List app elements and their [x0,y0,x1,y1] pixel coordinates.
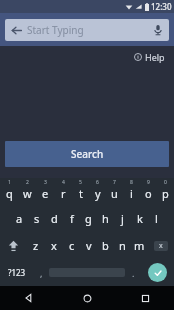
staticText: y [95,186,101,201]
button[interactable]: 3 [36,178,54,205]
staticText: w [23,186,32,201]
staticText: z [33,238,39,253]
staticText: Help [145,51,165,63]
button[interactable]: Shift [0,232,27,259]
staticText: t [79,186,83,201]
staticText: i [130,186,133,201]
button[interactable]: . [125,259,141,286]
staticText: m [134,238,145,253]
staticText: 6 [96,179,99,186]
button[interactable]: Recents [116,286,174,310]
button[interactable]: Search [5,141,169,167]
staticText: 1 [8,179,11,186]
staticText: 2 [26,179,29,186]
button[interactable]: b [97,232,114,259]
button[interactable]: Help [125,48,174,66]
staticText: c [69,238,75,253]
staticText: k [137,211,143,226]
staticText: o [145,186,152,201]
button[interactable]: Space [49,259,125,286]
staticText: a [16,211,23,226]
button[interactable]: 2 [18,178,36,205]
staticText: q [6,186,13,201]
button[interactable]: 6 [89,178,106,205]
staticText: , [40,267,43,279]
staticText: v [86,238,92,253]
button[interactable]: 1 [0,178,18,205]
button[interactable]: f [63,205,80,232]
staticText: s [34,211,40,226]
button[interactable]: c [63,232,80,259]
staticText: 9 [147,179,150,186]
button[interactable]: 7 [106,178,123,205]
staticText: b [102,238,109,253]
staticText: ?123 [8,267,26,278]
button[interactable]: h [97,205,114,232]
button[interactable]: l [148,205,165,232]
button[interactable]: g [80,205,97,232]
staticText: j [121,211,124,226]
staticText: d [51,211,58,226]
button[interactable]: Enter [141,259,174,286]
button[interactable]: n [114,232,131,259]
button[interactable]: Backspace [148,232,174,259]
staticText: 12:30 [151,1,172,12]
staticText: x [51,238,57,253]
button[interactable]: ?123 [0,259,33,286]
button[interactable]: v [80,232,97,259]
staticText: u [111,186,118,201]
staticText: r [61,186,66,201]
staticText: 3 [44,179,47,186]
button[interactable]: s [28,205,46,232]
staticText: f [70,211,74,226]
button[interactable]: 5 [72,178,89,205]
staticText: . [132,267,135,279]
staticText: 0 [164,179,167,186]
button[interactable]: k [131,205,148,232]
button[interactable]: , [33,259,49,286]
staticText: h [102,211,109,226]
staticText: n [119,238,126,253]
staticText: 5 [79,179,82,186]
staticText: l [155,211,158,226]
button[interactable]: 4 [54,178,72,205]
staticText: p [162,186,169,201]
button[interactable]: d [46,205,63,232]
button[interactable]: 8 [123,178,140,205]
button[interactable]: a [10,205,28,232]
button[interactable]: j [114,205,131,232]
button[interactable]: z [27,232,45,259]
button[interactable]: x [45,232,63,259]
button[interactable]: 0 [157,178,174,205]
staticText: g [85,211,92,226]
staticText: e [42,186,49,201]
button[interactable]: Start Typing [27,19,147,41]
staticText: x [159,241,163,251]
button[interactable]: Voice search [147,19,169,41]
button[interactable]: 9 [140,178,157,205]
button[interactable]: Back [5,19,27,41]
staticText: 4 [62,179,65,186]
staticText: 8 [130,179,133,186]
button[interactable]: m [131,232,148,259]
button[interactable]: Home [58,286,116,310]
button[interactable]: Back [0,286,58,310]
staticText: 7 [113,179,116,186]
staticText: Start Typing [27,23,84,37]
staticText: Search [71,147,104,161]
